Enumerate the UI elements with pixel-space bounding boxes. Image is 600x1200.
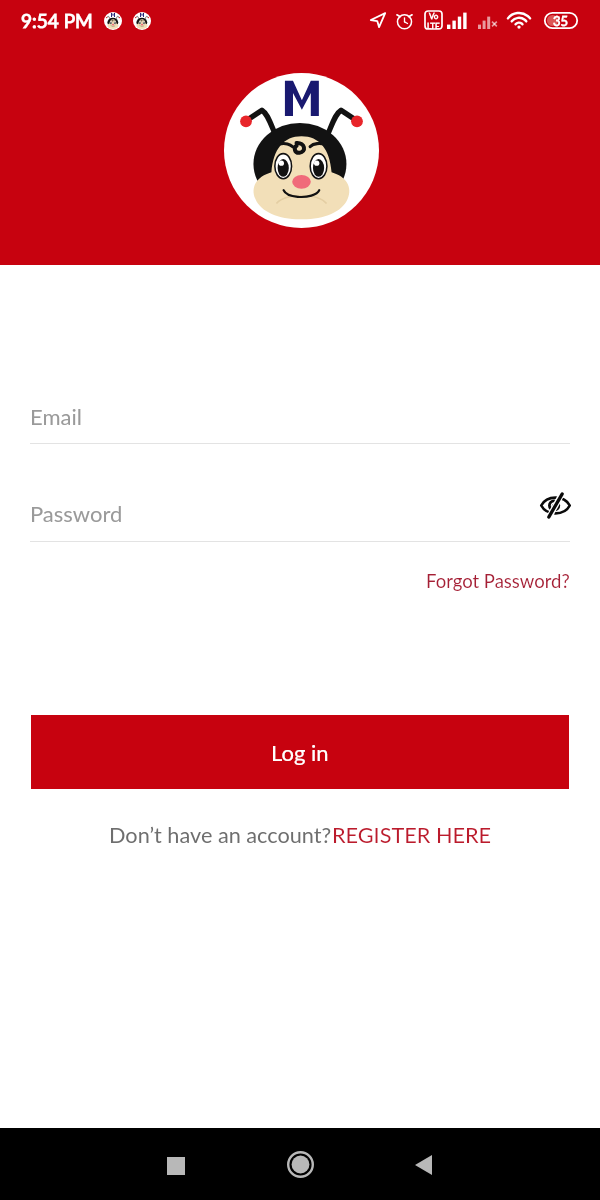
staticText: 9:54 PM [21, 9, 93, 32]
button[interactable]: Home [279, 1143, 321, 1185]
button[interactable]: Show password [532, 482, 578, 528]
button[interactable]: Forgot Password? [426, 570, 570, 592]
staticText: 35 [553, 13, 569, 29]
button[interactable]: Recent apps [155, 1145, 197, 1187]
staticText: Vo [429, 11, 439, 21]
staticText: Log in [271, 739, 329, 765]
button[interactable]: Back [402, 1144, 444, 1186]
staticText: Don’t have an account? [109, 822, 332, 848]
staticText: Password [30, 500, 570, 526]
staticText: LTE [427, 21, 440, 29]
button[interactable]: Log in [31, 715, 569, 789]
button[interactable]: REGISTER HERE [332, 822, 492, 848]
staticText: Email [30, 403, 82, 429]
